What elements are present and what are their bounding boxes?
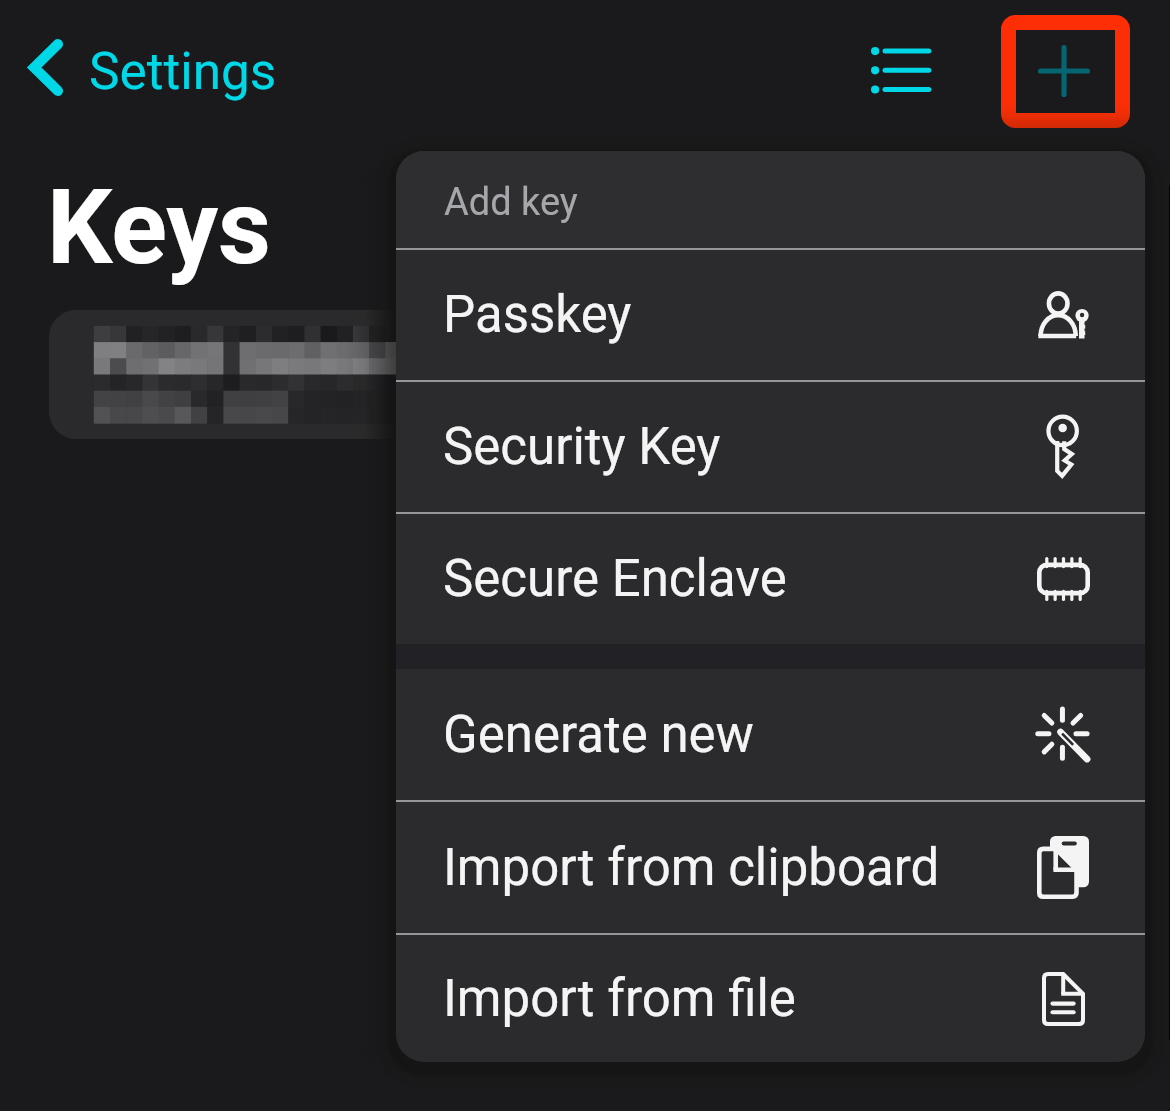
button[interactable]: Import from clipboard: [396, 802, 1145, 933]
button[interactable]: Settings: [18, 29, 287, 105]
button[interactable]: Import from file: [396, 935, 1145, 1062]
button[interactable]: [49, 310, 471, 439]
staticText: Settings: [89, 41, 277, 101]
staticText: Secure Enclave: [443, 549, 787, 609]
staticText: Import from clipboard: [443, 838, 940, 898]
button[interactable]: List view: [846, 20, 956, 120]
button[interactable]: Secure Enclave: [396, 514, 1145, 644]
staticText: Keys: [47, 167, 271, 288]
button[interactable]: Passkey: [396, 250, 1145, 380]
staticText: Generate new: [443, 705, 754, 765]
staticText: Add key: [444, 180, 578, 225]
staticText: Security Key: [443, 417, 721, 477]
button[interactable]: Add key: [1001, 15, 1130, 128]
button[interactable]: Generate new: [396, 669, 1145, 800]
staticText: Passkey: [443, 285, 632, 345]
button[interactable]: Security Key: [396, 382, 1145, 512]
staticText: Import from file: [443, 969, 796, 1029]
